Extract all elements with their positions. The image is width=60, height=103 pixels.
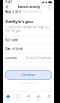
button[interactable]: Home	[3, 92, 13, 103]
button[interactable]: Send	[23, 92, 34, 103]
button[interactable]: Help	[47, 5, 52, 9]
staticText: United Kingdom	[26, 56, 50, 60]
staticText: Verify it's you	[5, 19, 33, 24]
button[interactable]: You	[44, 92, 54, 103]
staticText: Cards	[16, 99, 21, 101]
staticText: Full name	[5, 38, 18, 42]
staticText: Step 2 of 3	[5, 10, 21, 13]
staticText: Country	[5, 56, 16, 60]
button[interactable]: Cards	[13, 92, 23, 103]
staticText: Stats	[37, 99, 40, 101]
staticText: Date of birth	[5, 47, 23, 51]
staticText: 9:41	[5, 0, 12, 4]
staticText: Continue	[21, 73, 35, 77]
staticText: Confirm the details we have on file for …	[5, 25, 49, 32]
staticText: Account security	[17, 5, 39, 9]
staticText: ?	[49, 5, 50, 9]
staticText: You	[47, 99, 50, 101]
staticText: Identity check	[22, 10, 41, 13]
staticText: Home	[6, 99, 10, 101]
button[interactable]: Stats	[34, 92, 44, 103]
staticText: Send	[26, 99, 30, 101]
button[interactable]: Continue	[5, 70, 52, 80]
button[interactable]: Back	[5, 5, 10, 9]
